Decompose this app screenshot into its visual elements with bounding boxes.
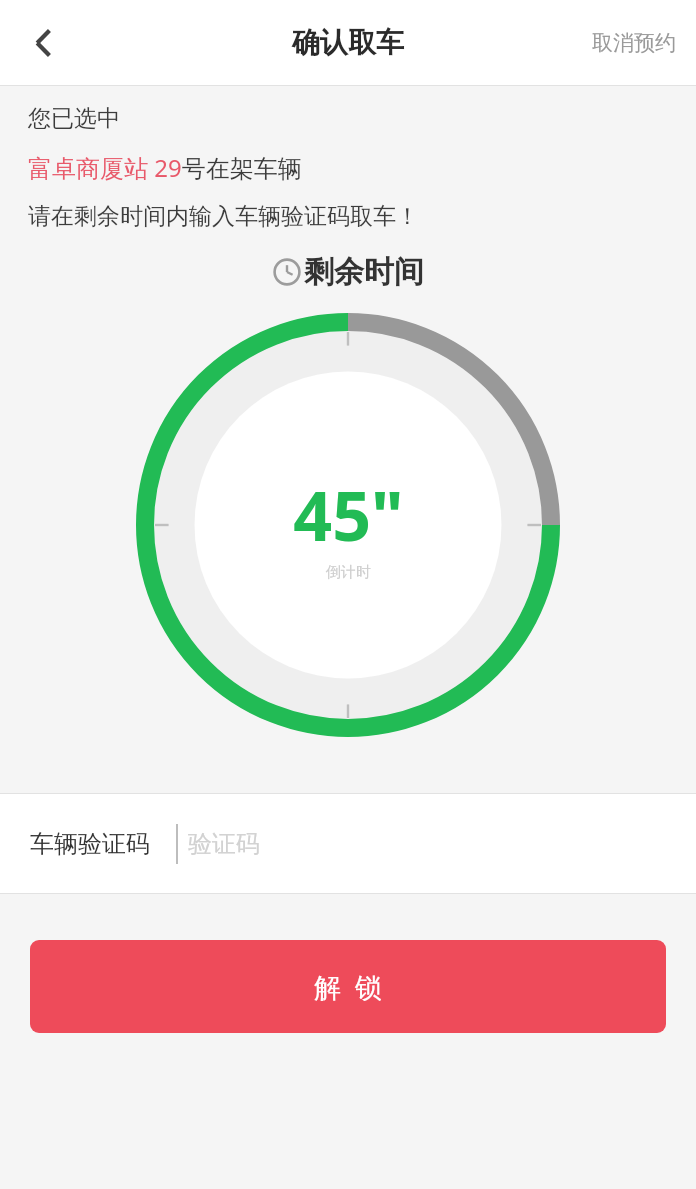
staticText: 请在剩余时间内输入车辆验证码取车！ bbox=[28, 202, 419, 231]
staticText: 解 锁 bbox=[314, 968, 383, 1005]
button[interactable]: 取消预约 bbox=[572, 16, 696, 70]
button[interactable]: 车辆验证码 bbox=[0, 794, 696, 893]
staticText: 45" bbox=[293, 468, 404, 561]
staticText: 车辆验证码 bbox=[30, 829, 150, 859]
button[interactable]: 解 锁 bbox=[30, 940, 666, 1033]
staticText: 富卓商厦站 29号在架车辆 bbox=[28, 151, 302, 184]
staticText: 验证码 bbox=[188, 829, 260, 859]
staticText: 倒计时 bbox=[326, 563, 371, 582]
staticText: 取消预约 bbox=[592, 30, 676, 56]
staticText: 确认取车 bbox=[292, 25, 404, 60]
staticText: 剩余时间 bbox=[304, 253, 424, 291]
button[interactable]: Back bbox=[10, 9, 78, 77]
staticText: 您已选中 bbox=[28, 104, 120, 133]
